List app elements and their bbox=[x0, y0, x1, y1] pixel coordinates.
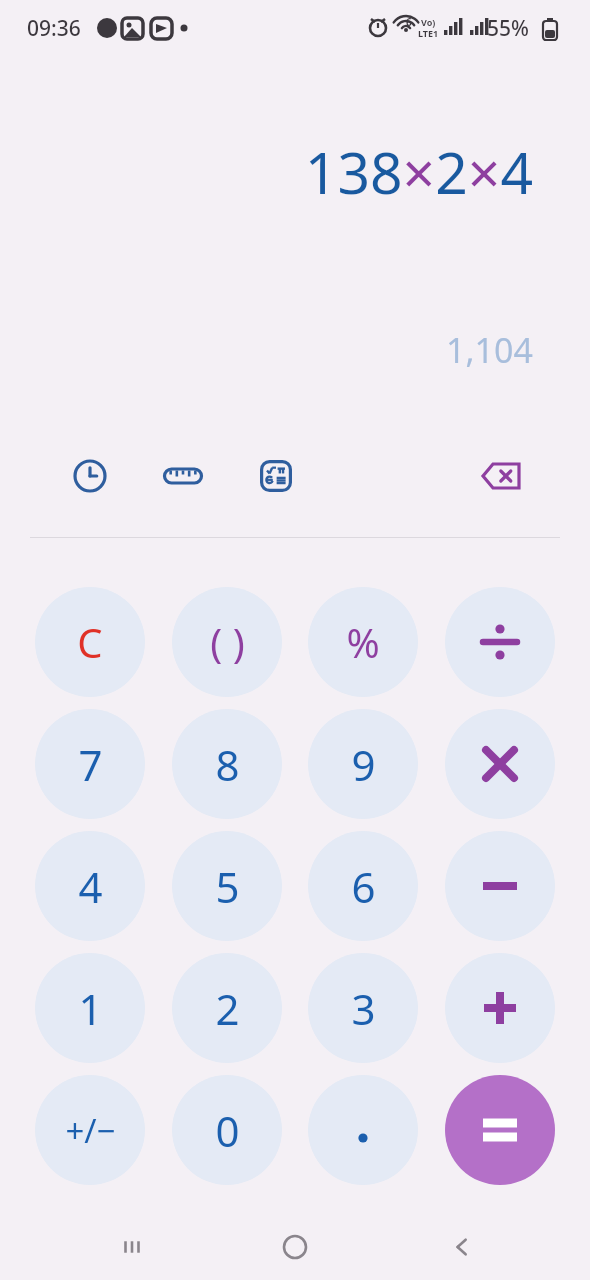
staticText: 6 bbox=[351, 858, 376, 915]
button[interactable]: 5 bbox=[172, 831, 282, 941]
button[interactable]: Recent apps bbox=[99, 1214, 165, 1280]
staticText: 6 bbox=[406, 15, 412, 29]
button[interactable]: Back bbox=[429, 1214, 495, 1280]
button[interactable] bbox=[308, 1075, 418, 1185]
button[interactable]: ( ) bbox=[172, 587, 282, 697]
button[interactable] bbox=[445, 953, 555, 1063]
button[interactable] bbox=[445, 831, 555, 941]
staticText: % bbox=[346, 615, 380, 669]
staticText: 7 bbox=[78, 736, 103, 793]
button[interactable]: Calculation history bbox=[66, 452, 114, 500]
button[interactable]: 7 bbox=[35, 709, 145, 819]
staticText: Vo) bbox=[421, 16, 436, 28]
staticText: 4 bbox=[78, 858, 103, 915]
staticText: 3 bbox=[351, 980, 376, 1037]
staticText: 1 bbox=[78, 980, 103, 1037]
staticText: ( ) bbox=[210, 615, 245, 669]
button[interactable]: 6 bbox=[308, 831, 418, 941]
staticText: 2 bbox=[215, 980, 240, 1037]
button[interactable]: Scientific calculator bbox=[252, 452, 300, 500]
button[interactable]: Unit converter bbox=[159, 452, 207, 500]
button[interactable]: 3 bbox=[308, 953, 418, 1063]
button[interactable]: 9 bbox=[308, 709, 418, 819]
staticText: 55% bbox=[487, 14, 529, 43]
button[interactable]: 2 bbox=[172, 953, 282, 1063]
button[interactable]: Backspace bbox=[477, 452, 525, 500]
staticText: 8 bbox=[215, 736, 240, 793]
staticText: C bbox=[77, 615, 103, 669]
staticText: 138×2×4 bbox=[304, 133, 533, 211]
button[interactable]: 4 bbox=[35, 831, 145, 941]
staticText: 9 bbox=[351, 736, 376, 793]
button[interactable]: C bbox=[35, 587, 145, 697]
button[interactable] bbox=[445, 709, 555, 819]
button[interactable] bbox=[445, 587, 555, 697]
button[interactable]: Home bbox=[262, 1214, 328, 1280]
button[interactable]: 8 bbox=[172, 709, 282, 819]
button[interactable]: 1 bbox=[35, 953, 145, 1063]
staticText: LTE1 bbox=[418, 27, 439, 39]
staticText: 1,104 bbox=[446, 327, 533, 373]
staticText: 5 bbox=[215, 858, 240, 915]
button[interactable] bbox=[445, 1075, 555, 1185]
staticText: 0 bbox=[215, 1102, 240, 1159]
button[interactable]: 0 bbox=[172, 1075, 282, 1185]
button[interactable]: +/− bbox=[35, 1075, 145, 1185]
staticText: 09:36 bbox=[27, 14, 81, 43]
button[interactable]: % bbox=[308, 587, 418, 697]
staticText: +/− bbox=[65, 1108, 116, 1153]
